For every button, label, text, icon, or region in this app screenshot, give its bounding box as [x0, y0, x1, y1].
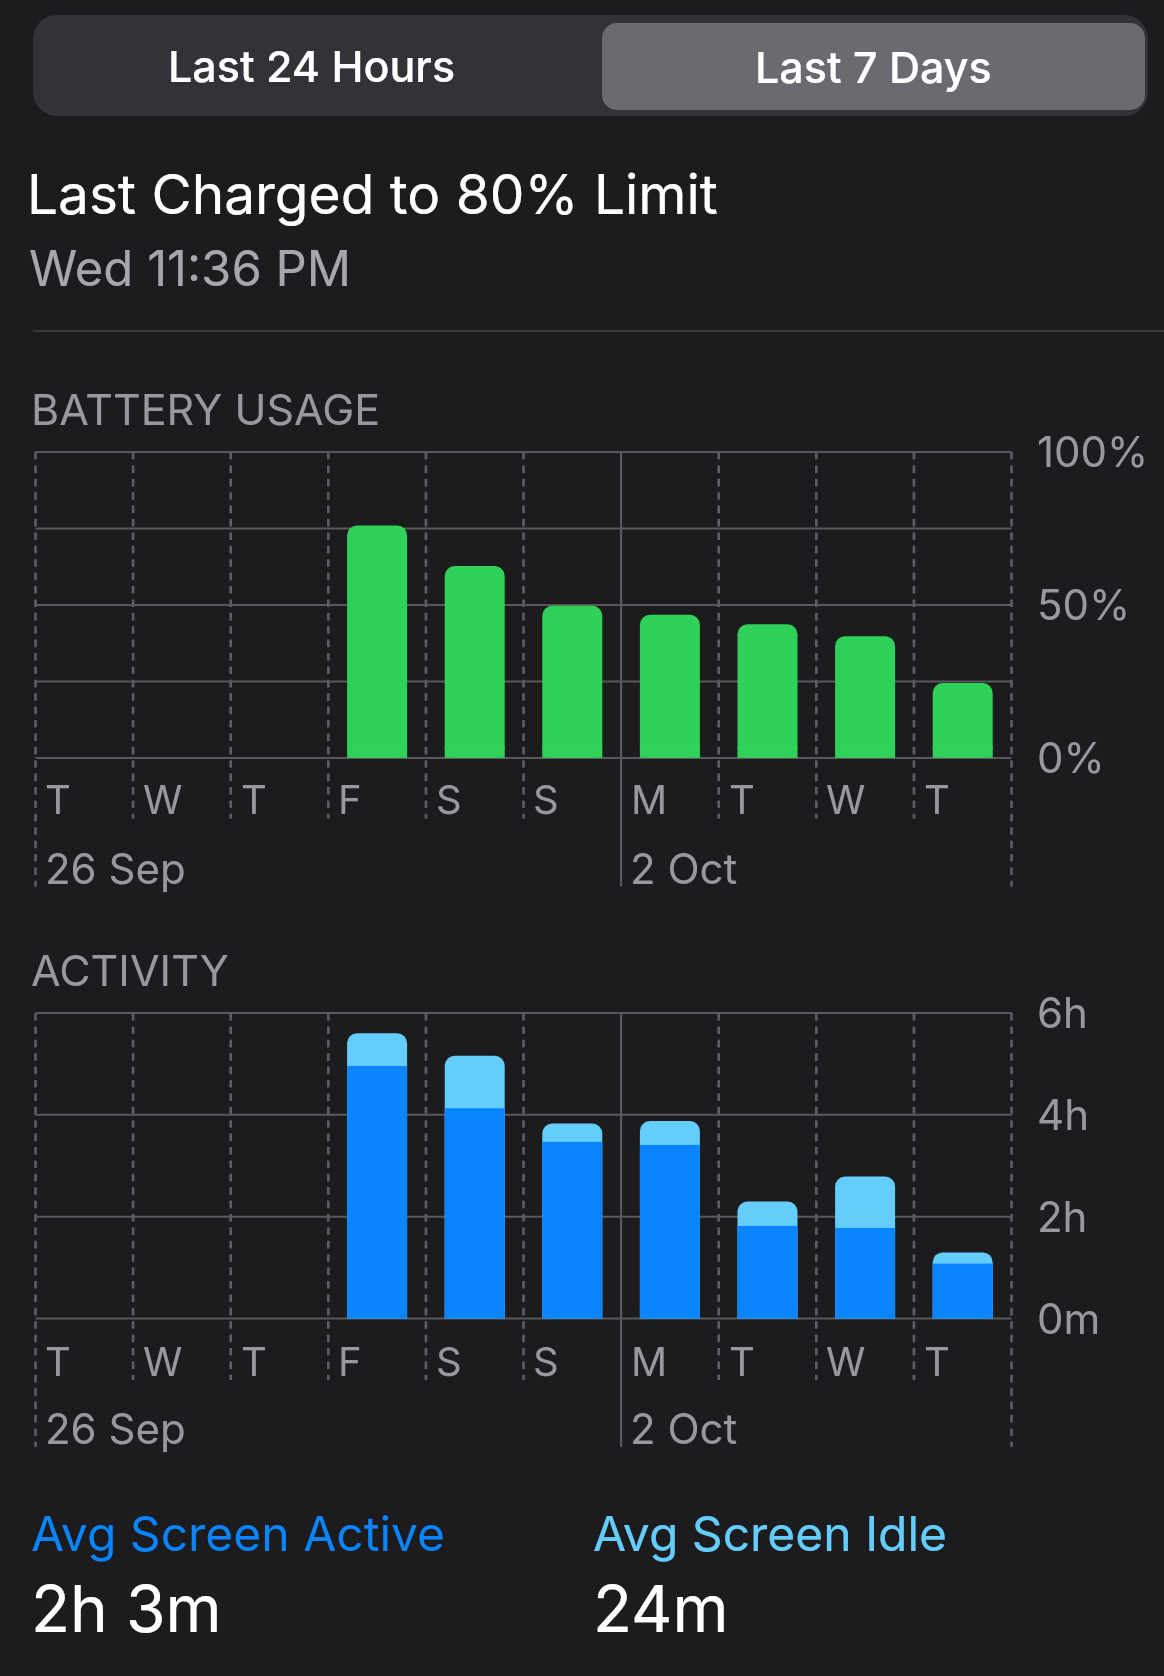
- staticText: Last 7 Days: [755, 41, 992, 93]
- staticText: S: [436, 1337, 462, 1385]
- staticText: 2 Oct: [630, 1403, 738, 1454]
- staticText: T: [241, 1337, 267, 1385]
- staticText: Avg Screen Active: [31, 1504, 446, 1562]
- staticText: 6h: [1037, 987, 1088, 1038]
- staticText: 0m: [1037, 1293, 1101, 1344]
- staticText: 100%: [1037, 426, 1149, 477]
- staticText: F: [338, 1337, 362, 1385]
- staticText: BATTERY USAGE: [31, 383, 381, 435]
- staticText: Wed 11:36 PM: [29, 239, 352, 298]
- button[interactable]: Avg Screen Idle: [592, 1498, 1122, 1650]
- staticText: 26 Sep: [45, 1403, 186, 1454]
- staticText: F: [338, 775, 362, 823]
- other: Screen activity bar chart, 26 September …: [0, 1013, 1164, 1447]
- staticText: 50%: [1037, 579, 1131, 630]
- staticText: W: [826, 1337, 866, 1385]
- staticText: T: [924, 1337, 950, 1385]
- staticText: 0%: [1037, 732, 1105, 783]
- staticText: 26 Sep: [45, 843, 186, 894]
- staticText: T: [729, 775, 755, 823]
- staticText: M: [631, 1337, 668, 1385]
- staticText: W: [826, 775, 866, 823]
- staticText: 24m: [593, 1570, 729, 1647]
- staticText: W: [143, 1337, 183, 1385]
- other: Battery usage bar chart, 26 September to…: [0, 452, 1164, 887]
- staticText: ACTIVITY: [31, 944, 229, 996]
- staticText: T: [45, 1337, 71, 1385]
- staticText: 2 Oct: [630, 843, 738, 894]
- staticText: 2h: [1037, 1191, 1088, 1242]
- staticText: T: [241, 775, 267, 823]
- staticText: 4h: [1037, 1089, 1089, 1140]
- staticText: S: [436, 775, 462, 823]
- staticText: T: [729, 1337, 755, 1385]
- staticText: T: [924, 775, 950, 823]
- staticText: Avg Screen Idle: [593, 1504, 948, 1562]
- staticText: Last Charged to 80% Limit: [27, 161, 718, 228]
- staticText: Last 24 Hours: [168, 40, 456, 92]
- button[interactable]: Last 7 Days: [602, 23, 1145, 110]
- staticText: S: [533, 775, 559, 823]
- staticText: W: [143, 775, 183, 823]
- staticText: M: [631, 775, 668, 823]
- staticText: 2h 3m: [31, 1570, 222, 1647]
- button[interactable]: Last 24 Hours: [33, 15, 590, 116]
- button[interactable]: Avg Screen Active: [30, 1498, 560, 1650]
- staticText: S: [533, 1337, 559, 1385]
- staticText: T: [45, 775, 71, 823]
